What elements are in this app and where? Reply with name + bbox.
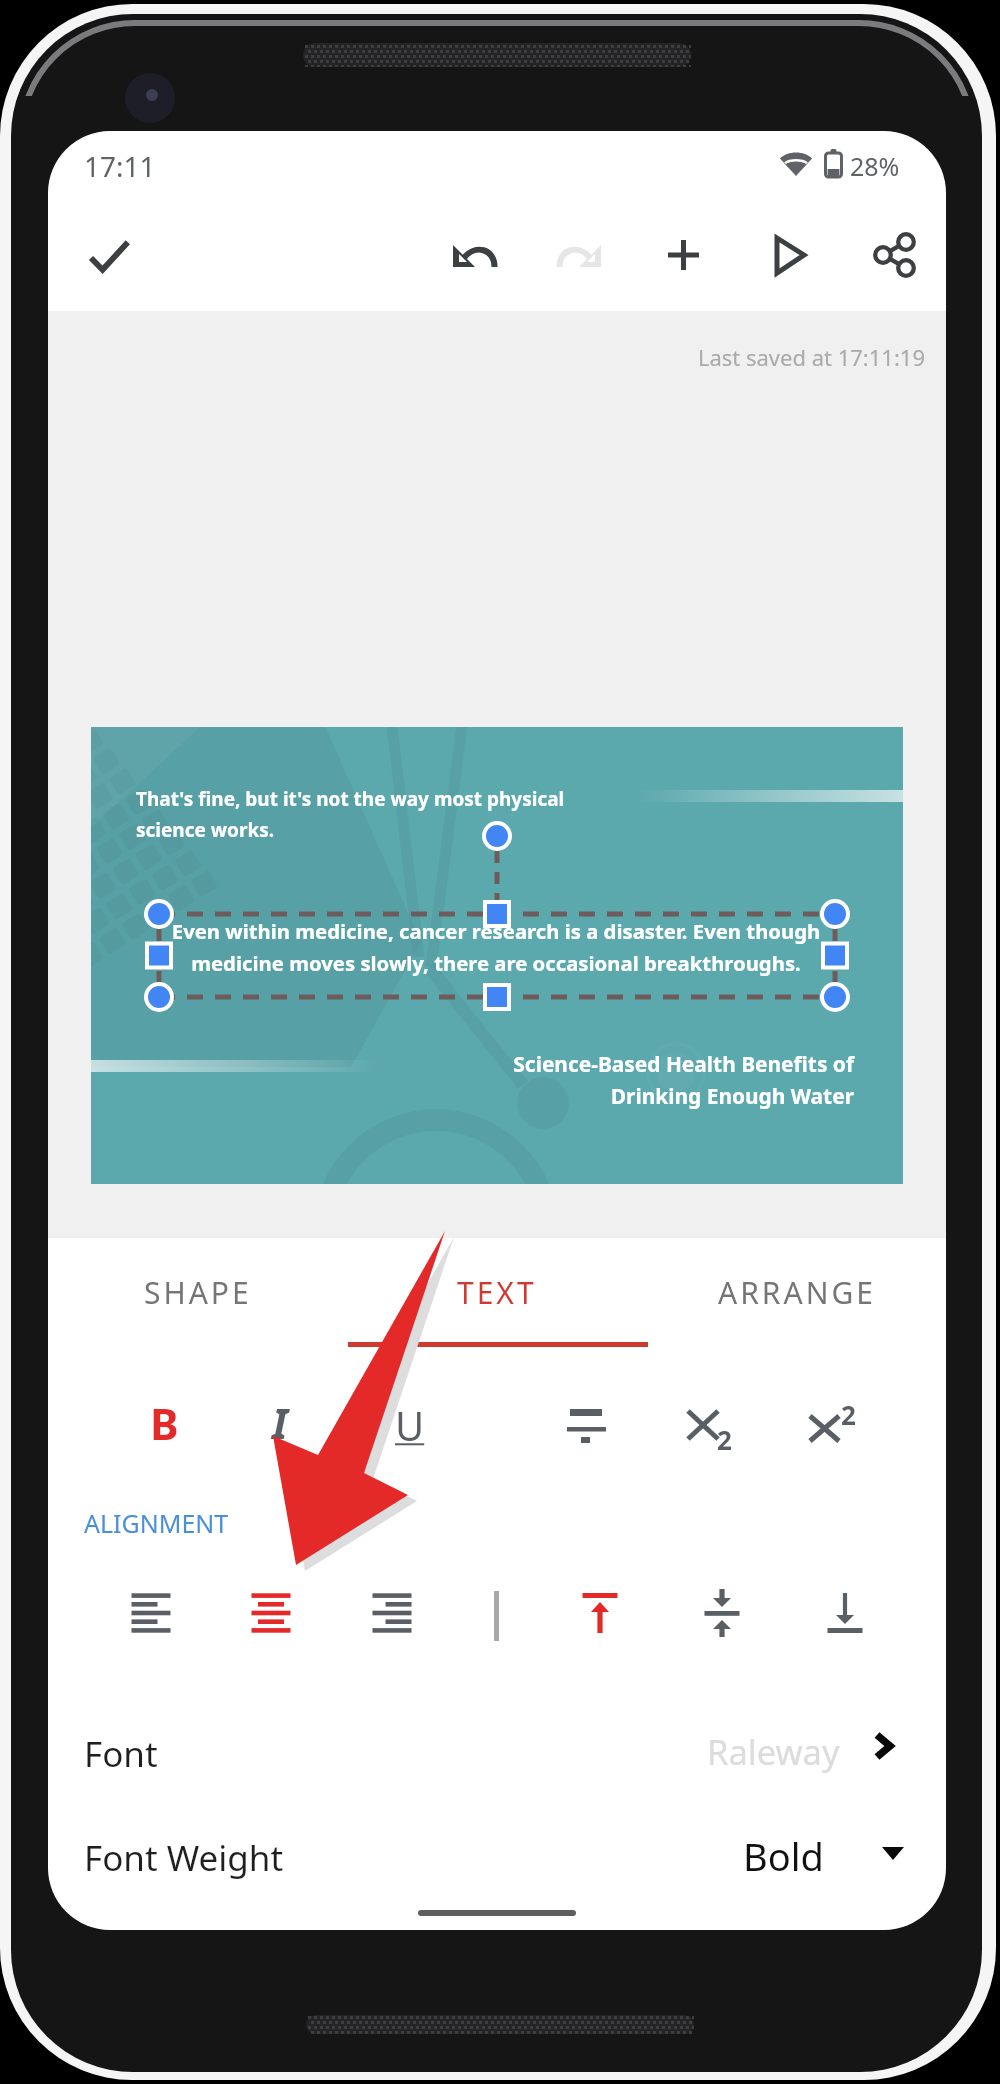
staticText: B xyxy=(150,1394,179,1453)
button[interactable]: Align middle xyxy=(684,1585,760,1661)
staticText: Bold xyxy=(743,1830,824,1882)
button[interactable]: TEXT xyxy=(348,1247,646,1337)
button[interactable]: Align right xyxy=(354,1575,430,1651)
staticText: 17:11 xyxy=(84,147,156,185)
button[interactable]: Align left xyxy=(113,1575,189,1651)
button[interactable]: SHAPE xyxy=(49,1247,347,1337)
staticText: U xyxy=(395,1398,425,1452)
staticText: ALIGNMENT xyxy=(84,1506,229,1540)
staticText: TEXT xyxy=(457,1272,537,1313)
button[interactable]: Done xyxy=(71,219,147,295)
button[interactable]: I xyxy=(242,1385,318,1461)
staticText: Font xyxy=(84,1730,158,1778)
staticText: 2 xyxy=(841,1397,856,1432)
staticText: Even within medicine, cancer research is… xyxy=(121,917,871,977)
staticText: Last saved at 17:11:19 xyxy=(600,342,925,372)
button[interactable]: Align bottom xyxy=(807,1585,883,1661)
button[interactable]: Subscript xyxy=(665,1385,741,1461)
button[interactable]: Strikethrough xyxy=(548,1385,624,1461)
button[interactable]: U xyxy=(372,1387,448,1463)
staticText: 28% xyxy=(850,149,900,183)
staticText: That's fine, but it's not the way most p… xyxy=(136,786,565,842)
staticText: ARRANGE xyxy=(718,1272,876,1313)
button[interactable]: Font xyxy=(48,1698,946,1802)
button[interactable]: Align centre xyxy=(233,1575,309,1651)
staticText: Raleway xyxy=(707,1728,840,1775)
staticText: Font Weight xyxy=(84,1834,284,1882)
button[interactable]: Redo xyxy=(543,219,619,295)
button[interactable]: Present xyxy=(752,219,828,295)
staticText: SHAPE xyxy=(144,1272,252,1313)
staticText: Science-Based Health Benefits of Drinkin… xyxy=(421,1050,854,1110)
button[interactable]: ARRANGE xyxy=(648,1247,946,1337)
button[interactable]: Superscript xyxy=(790,1385,866,1461)
button[interactable]: Share xyxy=(856,219,932,295)
button[interactable]: Font Weight xyxy=(48,1802,946,1906)
button[interactable]: Undo xyxy=(435,219,511,295)
button[interactable]: Add xyxy=(646,219,722,295)
staticText: I xyxy=(272,1395,288,1451)
button[interactable]: B xyxy=(126,1385,202,1461)
button[interactable]: Align top xyxy=(562,1585,638,1661)
staticText: 2 xyxy=(717,1422,732,1457)
